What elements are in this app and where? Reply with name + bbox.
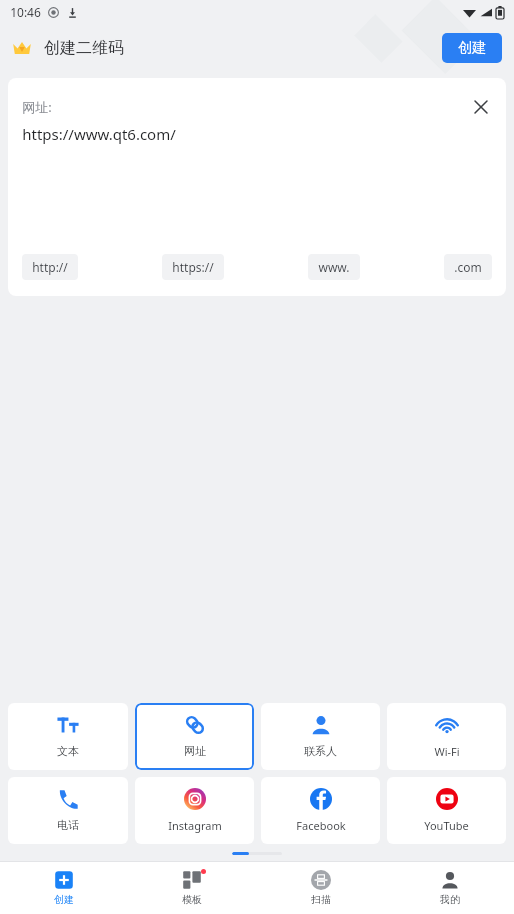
button[interactable]: YouTube (387, 777, 506, 844)
button[interactable]: 模板 (128, 862, 256, 914)
button[interactable]: 电话 (8, 777, 128, 844)
staticText: 文本 (57, 744, 79, 758)
button[interactable]: 创建 (0, 862, 128, 914)
button[interactable]: 文本 (8, 703, 128, 770)
staticText: www. (318, 259, 350, 275)
staticText: 我的 (440, 893, 460, 906)
button[interactable]: http:// (22, 254, 78, 280)
staticText: Wi-Fi (434, 744, 460, 759)
button[interactable]: 联系人 (261, 703, 380, 770)
staticText: 创建 (54, 893, 74, 906)
button[interactable]: 创建 (442, 33, 502, 63)
button[interactable]: www. (308, 254, 360, 280)
staticText: Facebook (296, 818, 346, 833)
staticText: .com (454, 259, 482, 275)
staticText: 10:46 (10, 4, 41, 20)
staticText: 创建 (458, 39, 486, 57)
button[interactable]: 扫描 (256, 862, 385, 914)
staticText: 联系人 (304, 744, 337, 758)
button[interactable]: 我的 (385, 862, 514, 914)
button[interactable]: Wi-Fi (387, 703, 506, 770)
staticText: 模板 (182, 893, 202, 906)
staticText: 网址: (22, 98, 52, 116)
button[interactable]: Instagram (135, 777, 254, 844)
button[interactable]: Clear (468, 94, 494, 120)
button[interactable]: .com (444, 254, 492, 280)
staticText: 网址 (184, 744, 206, 758)
button[interactable]: Facebook (261, 777, 380, 844)
staticText: https://www.qt6.com/ (22, 124, 176, 144)
staticText: http:// (32, 259, 68, 275)
staticText: YouTube (424, 818, 469, 833)
staticText: https:// (172, 259, 214, 275)
button[interactable]: https:// (162, 254, 224, 280)
staticText: 电话 (57, 818, 79, 832)
button[interactable]: 网址 (135, 703, 254, 770)
staticText: 创建二维码 (44, 38, 124, 58)
staticText: 扫描 (311, 893, 331, 906)
staticText: Instagram (168, 818, 222, 833)
